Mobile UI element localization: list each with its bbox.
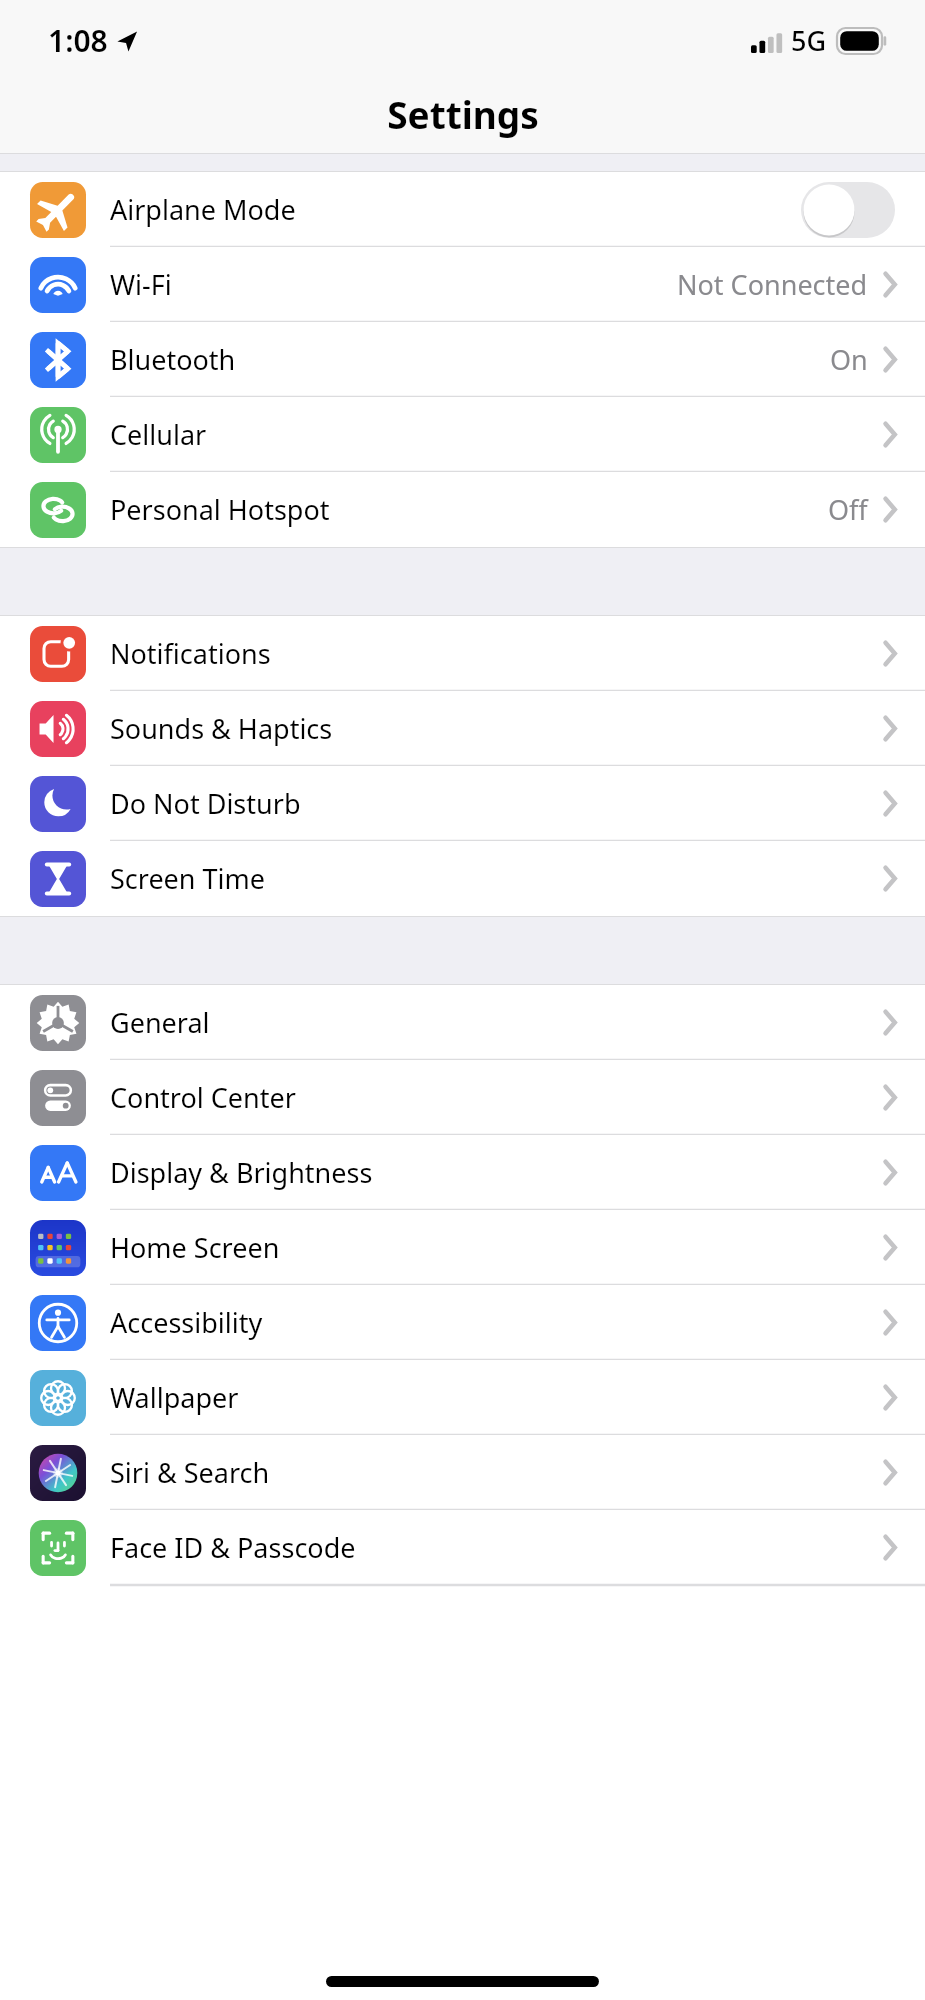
staticText: 1:08 [48, 20, 108, 61]
staticText: Notifications [110, 635, 271, 672]
staticText: 5G [791, 22, 827, 59]
button[interactable]: Siri & Search [0, 1435, 925, 1510]
button[interactable]: Do Not Disturb [0, 766, 925, 841]
staticText: Cellular [110, 416, 207, 453]
staticText: Wi-Fi [110, 266, 172, 303]
button[interactable]: Screen Time [0, 841, 925, 916]
button[interactable]: General [0, 985, 925, 1060]
button[interactable]: Sounds & Haptics [0, 691, 925, 766]
staticText: Bluetooth [110, 341, 236, 378]
staticText: General [110, 1004, 210, 1041]
button[interactable]: Home Screen [0, 1210, 925, 1285]
button[interactable]: Cellular [0, 397, 925, 472]
staticText: Face ID & Passcode [110, 1529, 356, 1566]
button[interactable]: Wallpaper [0, 1360, 925, 1435]
staticText: Airplane Mode [110, 191, 296, 228]
button[interactable]: Airplane Mode toggle [801, 182, 895, 238]
staticText: Display & Brightness [110, 1154, 373, 1191]
staticText: Siri & Search [110, 1454, 270, 1491]
button[interactable]: Wi-Fi [0, 247, 925, 322]
staticText: Off [828, 491, 868, 528]
button[interactable]: Notifications [0, 616, 925, 691]
staticText: Not Connected [677, 266, 868, 303]
button[interactable]: Face ID & Passcode [0, 1510, 925, 1585]
staticText: Wallpaper [110, 1379, 239, 1416]
button[interactable]: Bluetooth [0, 322, 925, 397]
button[interactable]: Control Center [0, 1060, 925, 1135]
staticText: Home Screen [110, 1229, 280, 1266]
staticText: Personal Hotspot [110, 491, 330, 528]
button[interactable]: Personal Hotspot [0, 472, 925, 547]
button[interactable]: Display & Brightness [0, 1135, 925, 1210]
staticText: Settings [387, 89, 539, 139]
staticText: On [830, 341, 868, 378]
staticText: Accessibility [110, 1304, 263, 1341]
button[interactable]: Airplane Mode [0, 172, 925, 247]
staticText: Screen Time [110, 860, 266, 897]
staticText: Sounds & Haptics [110, 710, 333, 747]
button[interactable]: Accessibility [0, 1285, 925, 1360]
staticText: Control Center [110, 1079, 296, 1116]
staticText: Do Not Disturb [110, 785, 301, 822]
